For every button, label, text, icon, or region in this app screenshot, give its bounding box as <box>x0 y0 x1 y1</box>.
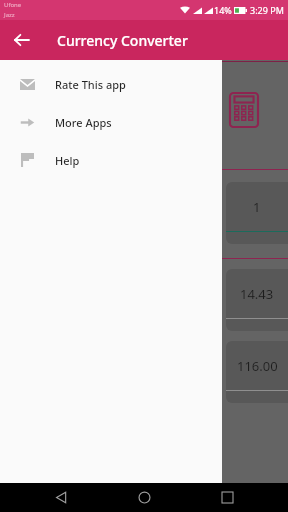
staticText: Rate This app <box>55 77 126 92</box>
button[interactable]: 14.43 <box>226 269 288 331</box>
staticText: 116.00 <box>237 357 278 375</box>
button[interactable]: More Apps <box>0 103 222 141</box>
staticText: Currency Converter <box>57 31 188 50</box>
button[interactable]: 1 <box>226 182 288 244</box>
staticText: 3:29 PM <box>250 4 284 16</box>
staticText: 14% <box>214 4 232 16</box>
staticText: Jazz <box>4 11 15 19</box>
button[interactable]: Help <box>0 141 222 179</box>
staticText: 14.43 <box>240 285 274 303</box>
staticText: 1 <box>253 198 261 216</box>
staticText: Help <box>55 153 80 168</box>
button[interactable]: 116.00 <box>226 341 288 403</box>
button[interactable]: Rate This app <box>0 65 222 103</box>
staticText: More Apps <box>55 115 112 130</box>
staticText: Ufone <box>4 1 22 9</box>
button[interactable]: Back <box>5 23 39 57</box>
button[interactable]: Back <box>39 483 83 512</box>
button[interactable]: Home <box>122 483 166 512</box>
button[interactable]: Recent apps <box>205 483 249 512</box>
staticText: RATE LIST <box>14 72 64 87</box>
